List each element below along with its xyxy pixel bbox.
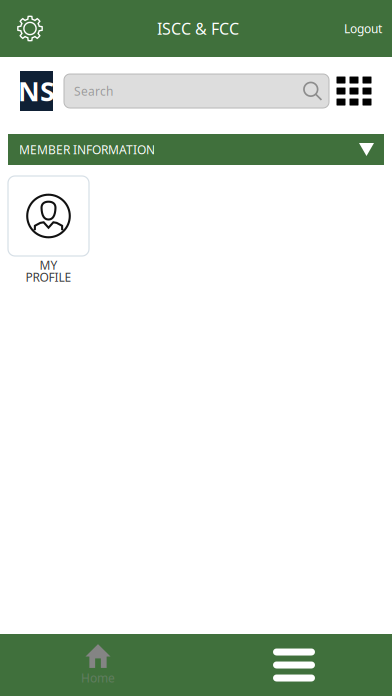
- staticText: MEMBER INFORMATION: [19, 141, 155, 157]
- staticText: PROFILE: [25, 269, 71, 285]
- staticText: Logout: [344, 20, 382, 36]
- staticText: MY: [39, 257, 57, 273]
- button[interactable]: MY: [8, 176, 89, 283]
- button[interactable]: Menu: [196, 634, 392, 696]
- staticText: Search: [74, 83, 113, 99]
- button[interactable]: Settings: [8, 0, 52, 57]
- button[interactable]: App grid: [336, 71, 372, 111]
- button[interactable]: Home: [0, 634, 196, 696]
- staticText: ISCC & FCC: [157, 18, 239, 39]
- button[interactable]: Logout: [344, 0, 392, 57]
- staticText: Home: [81, 670, 115, 686]
- staticText: NS: [18, 73, 55, 109]
- button[interactable]: MEMBER INFORMATION: [8, 134, 384, 165]
